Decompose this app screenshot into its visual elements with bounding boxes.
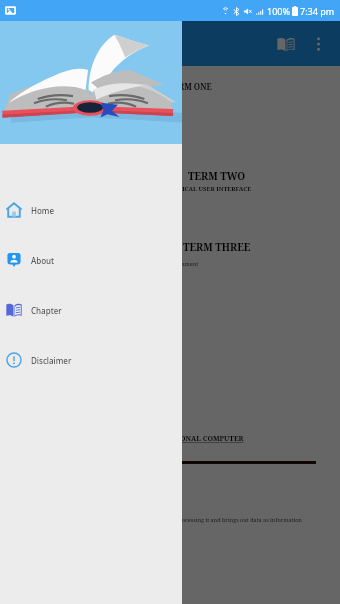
button[interactable]: About [0, 235, 182, 285]
button[interactable]: Book [272, 30, 300, 58]
staticText: PERSONAL COMPUTER [162, 434, 244, 444]
staticText: Chapter [31, 305, 62, 316]
staticText: 100% [267, 5, 290, 17]
staticText: A computer is a machine that accepts dat… [40, 516, 302, 523]
staticText: TERM ONE [168, 81, 212, 92]
button[interactable]: Home [0, 185, 182, 235]
staticText: Home [31, 205, 55, 216]
button[interactable]: Disclaimer [0, 335, 182, 385]
staticText: 7:34 pm [300, 5, 335, 17]
staticText: Computer Assignment [140, 260, 199, 267]
button[interactable]: More options [304, 30, 332, 58]
staticText: TERM THREE [183, 240, 251, 254]
staticText: Disclaimer [31, 355, 72, 366]
staticText: GRAPHICAL USER INTERFACE [160, 185, 252, 193]
staticText: About [31, 255, 55, 266]
button[interactable]: Chapter [0, 285, 182, 335]
staticText: TERM TWO [188, 169, 246, 183]
